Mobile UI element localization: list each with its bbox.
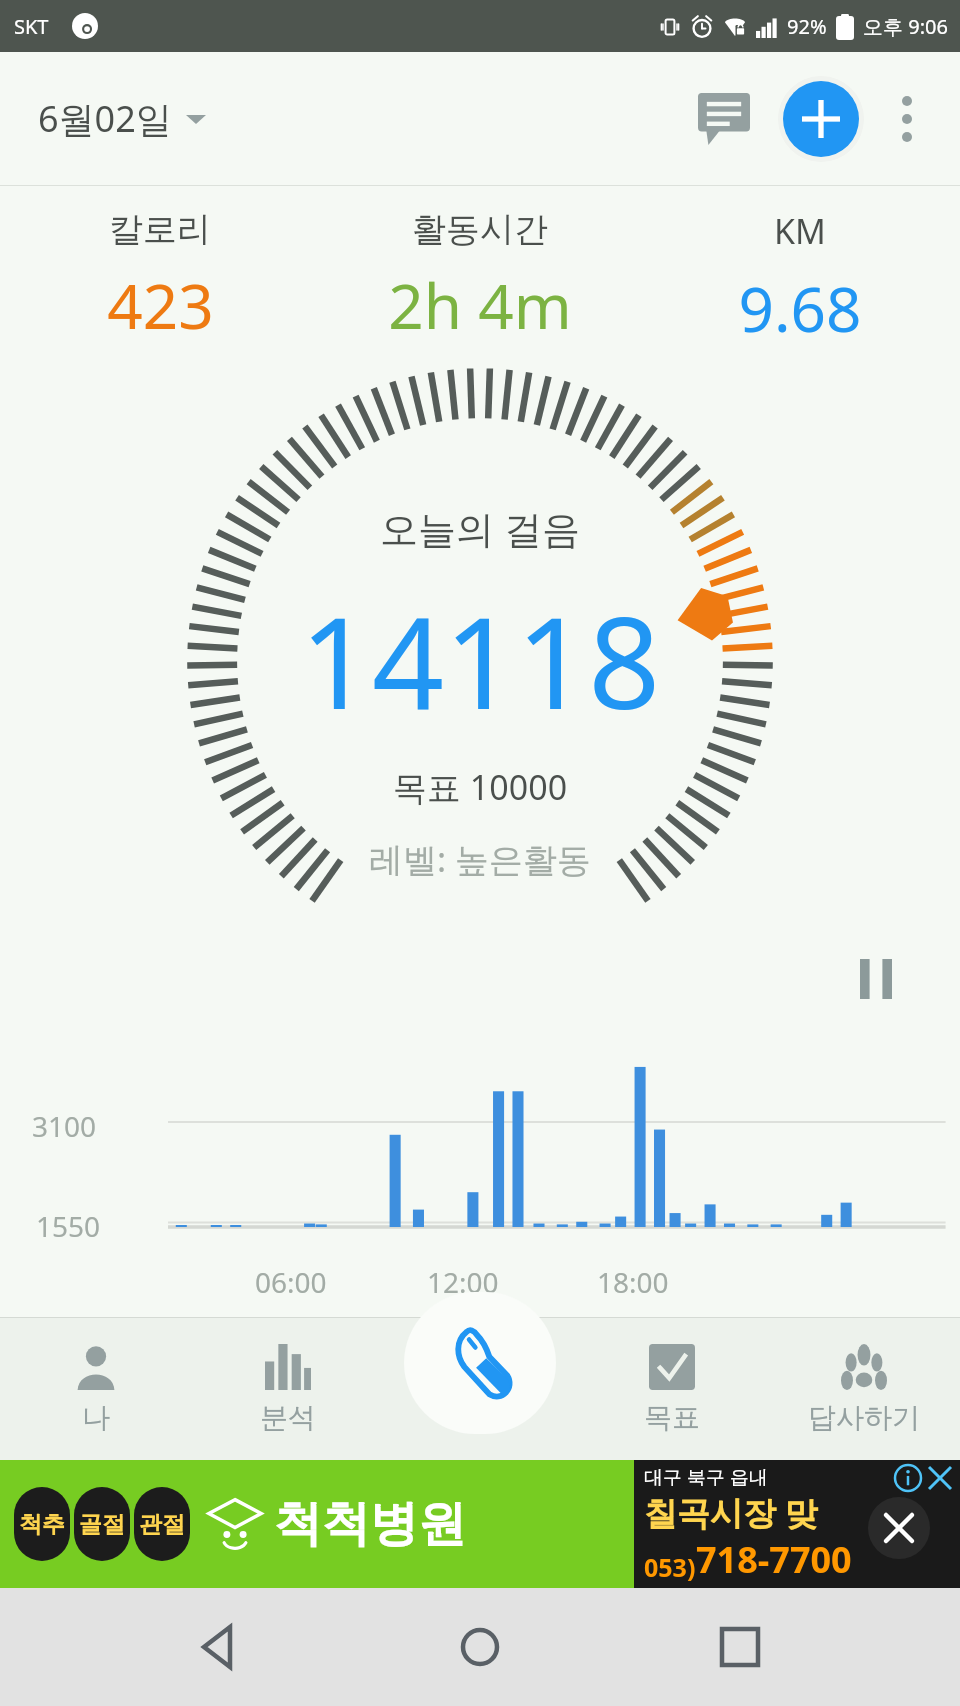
staticText: 답사하기	[808, 1400, 920, 1435]
staticText: 423	[107, 263, 214, 347]
staticText: 14118	[300, 574, 661, 746]
button[interactable]: Close ad	[924, 1462, 956, 1494]
staticText: 1550	[36, 1207, 101, 1245]
staticText: 골절	[79, 1510, 125, 1539]
staticText: 2h 4m	[388, 263, 572, 347]
staticText: 3100	[32, 1107, 97, 1145]
button[interactable]: Close	[868, 1497, 930, 1559]
staticText: 목표	[644, 1400, 700, 1435]
button[interactable]: Recents	[700, 1607, 780, 1687]
button[interactable]: Home	[440, 1607, 520, 1687]
button[interactable]: More options	[874, 86, 940, 152]
staticText: 053)	[644, 1550, 696, 1584]
staticText: SKT	[14, 13, 49, 40]
staticText: 나	[82, 1400, 110, 1435]
button[interactable]: 목표	[576, 1318, 768, 1460]
staticText: 칠곡시장 맞	[644, 1490, 818, 1535]
button[interactable]: Messages	[688, 83, 760, 155]
button[interactable]: 칼로리	[0, 208, 320, 347]
staticText: 칼로리	[109, 208, 211, 251]
button[interactable]: KM	[640, 208, 960, 350]
staticText: 활동시간	[412, 208, 548, 251]
staticText: 분석	[260, 1400, 316, 1435]
staticText: KM	[774, 208, 826, 254]
button[interactable]: Ad info	[892, 1462, 924, 1494]
button[interactable]: Back	[180, 1607, 260, 1687]
staticText: 06:00	[255, 1263, 327, 1301]
staticText: 9.68	[738, 266, 862, 350]
button[interactable]: 답사하기	[768, 1318, 960, 1460]
staticText: 대구 북구 읍내	[644, 1464, 768, 1490]
button[interactable]: 대구 북구 읍내	[634, 1460, 960, 1588]
button[interactable]: Pause	[848, 951, 904, 1007]
staticText: 18:00	[597, 1263, 669, 1301]
staticText: 6월02일	[38, 94, 172, 143]
button[interactable]: 분석	[192, 1318, 384, 1460]
button[interactable]: 척추	[0, 1460, 634, 1588]
staticText: 12:00	[427, 1263, 499, 1301]
staticText: 718-7700	[696, 1535, 852, 1584]
button[interactable]: 나	[0, 1318, 192, 1460]
staticText: 오늘의 걸음	[380, 502, 580, 554]
button[interactable]: 활동시간	[320, 208, 640, 347]
button[interactable]: Add	[783, 81, 859, 157]
staticText: 척추	[19, 1510, 65, 1539]
staticText: 레벨: 높은활동	[369, 836, 591, 882]
staticText: 92%	[787, 13, 827, 40]
staticText: 오후 9:06	[863, 13, 948, 40]
staticText: 척척병원	[274, 1494, 466, 1554]
button[interactable]: Activity	[404, 1292, 556, 1434]
button[interactable]: Activity	[384, 1318, 576, 1460]
staticText: 목표 10000	[393, 764, 568, 810]
button[interactable]: 6월02일	[34, 86, 210, 151]
staticText: 관절	[139, 1510, 185, 1539]
